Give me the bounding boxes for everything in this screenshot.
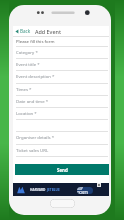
button[interactable]: Back xyxy=(13,26,33,36)
button[interactable]: HARVARD xyxy=(13,183,109,196)
staticText: Add Event xyxy=(35,28,61,35)
staticText: Event description * xyxy=(16,73,55,79)
button[interactable]: Event title * xyxy=(13,58,109,70)
button[interactable]: Send xyxy=(15,164,109,175)
button[interactable]: Home xyxy=(50,199,75,208)
staticText: BUY TICKETS xyxy=(77,187,93,194)
button[interactable]: Category * xyxy=(13,46,109,58)
staticText: Ticket sales URL xyxy=(16,147,49,153)
staticText: HARVARD xyxy=(30,188,46,192)
staticText: Category * xyxy=(16,49,38,55)
button[interactable]: Organiser details * xyxy=(13,131,109,143)
button[interactable]: Location * xyxy=(13,107,109,119)
staticText: Date and time * xyxy=(16,98,49,104)
button[interactable]: Close ad xyxy=(97,183,101,187)
staticText: Please fill this form xyxy=(16,38,55,44)
staticText: Location * xyxy=(16,110,37,116)
button[interactable]: BUY TICKETS xyxy=(77,187,93,194)
staticText: Send xyxy=(57,167,68,173)
button[interactable]: Ticket sales URL xyxy=(13,144,109,156)
staticText: Organiser details * xyxy=(16,134,55,140)
staticText: JETBLUE xyxy=(47,188,60,192)
staticText: Times * xyxy=(16,86,32,92)
button[interactable]: Times * xyxy=(13,83,109,95)
staticText: Back xyxy=(20,28,31,34)
button[interactable]: Date and time * xyxy=(13,95,109,107)
button[interactable]: Event description * xyxy=(13,70,109,82)
staticText: Event title * xyxy=(16,61,40,67)
